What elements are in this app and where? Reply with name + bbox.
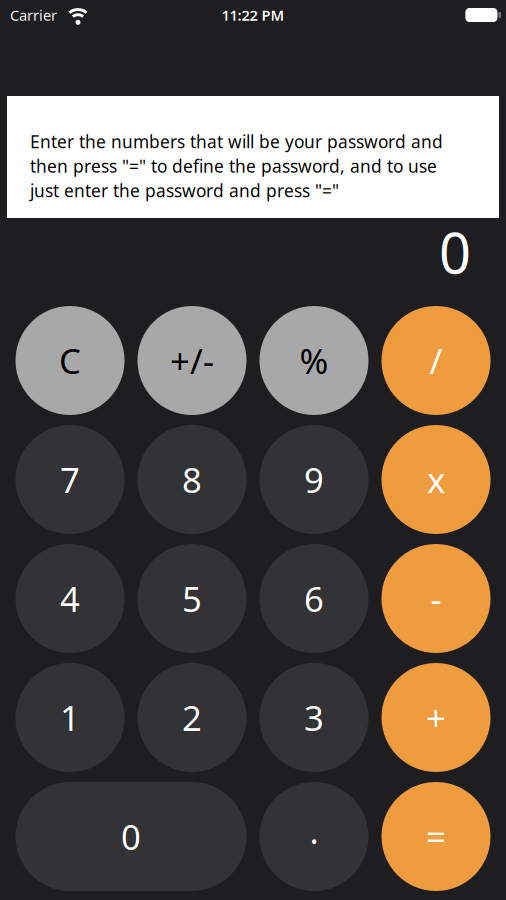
button[interactable]: x	[381, 425, 490, 534]
staticText: +	[426, 694, 446, 740]
button[interactable]: +	[381, 663, 490, 772]
button[interactable]: %	[259, 306, 368, 415]
staticText: 1	[60, 694, 80, 740]
button[interactable]: +/-	[137, 306, 246, 415]
staticText: /	[429, 337, 442, 383]
staticText: -	[430, 575, 441, 621]
button[interactable]: 4	[15, 544, 124, 653]
staticText: =	[426, 813, 446, 859]
staticText: .	[309, 807, 318, 853]
button[interactable]: -	[381, 544, 490, 653]
button[interactable]: 7	[15, 425, 124, 534]
button[interactable]: 3	[259, 663, 368, 772]
staticText: %	[299, 337, 328, 383]
staticText: x	[427, 456, 445, 502]
staticText: 9	[304, 456, 324, 502]
button[interactable]: 6	[259, 544, 368, 653]
button[interactable]: 5	[137, 544, 246, 653]
staticText: 8	[182, 456, 202, 502]
button[interactable]: /	[381, 306, 490, 415]
button[interactable]: C	[15, 306, 124, 415]
button[interactable]: 0	[15, 782, 246, 891]
staticText: 2	[182, 694, 202, 740]
staticText: 7	[60, 456, 80, 502]
staticText: Carrier	[10, 5, 57, 25]
button[interactable]: .	[259, 782, 368, 891]
button[interactable]: 1	[15, 663, 124, 772]
button[interactable]: 9	[259, 425, 368, 534]
staticText: 11:22 PM	[221, 5, 284, 25]
staticText: 0	[121, 813, 141, 859]
staticText: 6	[304, 575, 324, 621]
staticText: Enter the numbers that will be your pass…	[30, 130, 443, 202]
staticText: 0	[439, 215, 471, 289]
staticText: C	[59, 337, 81, 383]
button[interactable]: 8	[137, 425, 246, 534]
staticText: 4	[60, 575, 80, 621]
button[interactable]: =	[381, 782, 490, 891]
button[interactable]: 2	[137, 663, 246, 772]
staticText: 5	[182, 575, 202, 621]
staticText: 3	[304, 694, 324, 740]
staticText: +/-	[170, 337, 214, 383]
